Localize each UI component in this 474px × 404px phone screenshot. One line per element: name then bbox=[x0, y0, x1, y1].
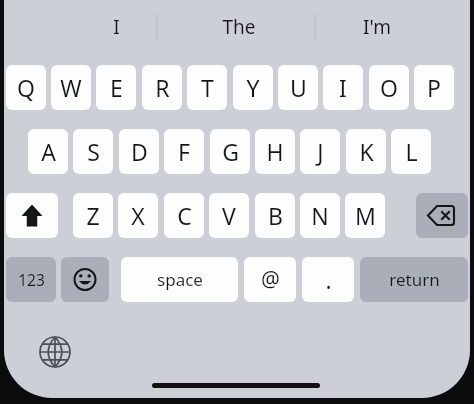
staticText: W bbox=[60, 72, 82, 103]
button[interactable]: . bbox=[302, 257, 354, 302]
button[interactable]: Backspace bbox=[416, 193, 468, 238]
staticText: N bbox=[311, 200, 329, 231]
staticText: P bbox=[427, 72, 441, 103]
button[interactable]: Y bbox=[233, 65, 273, 110]
button[interactable]: N bbox=[300, 193, 340, 238]
button[interactable]: V bbox=[209, 193, 249, 238]
button[interactable]: return bbox=[360, 257, 468, 302]
button[interactable]: 123 bbox=[6, 257, 56, 302]
button[interactable]: K bbox=[346, 129, 386, 174]
button[interactable]: X bbox=[118, 193, 158, 238]
staticText: L bbox=[405, 136, 418, 167]
button[interactable]: space bbox=[121, 257, 238, 302]
button[interactable]: Emoji keyboard bbox=[61, 257, 109, 302]
button[interactable]: G bbox=[210, 129, 250, 174]
button[interactable]: M bbox=[345, 193, 385, 238]
button[interactable]: S bbox=[73, 129, 113, 174]
button[interactable]: W bbox=[51, 65, 91, 110]
staticText: I'm bbox=[363, 14, 391, 40]
button[interactable]: A bbox=[28, 129, 68, 174]
staticText: K bbox=[359, 136, 374, 167]
button[interactable]: I bbox=[74, 11, 159, 43]
staticText: S bbox=[87, 136, 100, 167]
staticText: @ bbox=[261, 265, 280, 294]
staticText: M bbox=[355, 200, 376, 231]
staticText: O bbox=[380, 72, 398, 103]
button[interactable]: J bbox=[300, 129, 340, 174]
button[interactable]: H bbox=[255, 129, 295, 174]
staticText: J bbox=[317, 136, 324, 167]
button[interactable]: L bbox=[391, 129, 431, 174]
button[interactable]: Z bbox=[73, 193, 113, 238]
button[interactable]: Q bbox=[6, 65, 46, 110]
button[interactable]: C bbox=[164, 193, 204, 238]
button[interactable]: U bbox=[278, 65, 318, 110]
button[interactable]: O bbox=[369, 65, 409, 110]
staticText: Y bbox=[246, 72, 260, 103]
button[interactable]: @ bbox=[244, 257, 296, 302]
button[interactable]: Switch keyboard language bbox=[34, 331, 76, 373]
staticText: I bbox=[113, 14, 120, 40]
staticText: E bbox=[110, 72, 123, 103]
staticText: . bbox=[325, 264, 332, 295]
staticText: Z bbox=[86, 200, 100, 231]
staticText: 123 bbox=[18, 269, 45, 290]
staticText: I bbox=[339, 72, 347, 103]
button[interactable]: P bbox=[414, 65, 454, 110]
staticText: The bbox=[222, 14, 256, 40]
button[interactable]: The bbox=[179, 11, 299, 43]
button[interactable]: F bbox=[164, 129, 204, 174]
staticText: H bbox=[266, 136, 284, 167]
button[interactable]: B bbox=[255, 193, 295, 238]
staticText: X bbox=[131, 200, 145, 231]
staticText: Q bbox=[17, 72, 35, 103]
button[interactable]: I bbox=[323, 65, 363, 110]
button[interactable]: R bbox=[142, 65, 182, 110]
button[interactable]: E bbox=[96, 65, 136, 110]
button[interactable]: Shift bbox=[6, 193, 58, 238]
button[interactable]: I'm bbox=[329, 11, 424, 43]
button[interactable]: T bbox=[187, 65, 227, 110]
staticText: A bbox=[41, 136, 56, 167]
staticText: B bbox=[268, 200, 283, 231]
staticText: U bbox=[290, 72, 307, 103]
staticText: V bbox=[222, 200, 236, 231]
staticText: C bbox=[177, 200, 192, 231]
staticText: G bbox=[222, 136, 239, 167]
staticText: return bbox=[389, 268, 440, 291]
button[interactable]: D bbox=[119, 129, 159, 174]
staticText: T bbox=[201, 72, 214, 103]
staticText: F bbox=[178, 136, 190, 167]
staticText: R bbox=[155, 72, 170, 103]
staticText: D bbox=[131, 136, 148, 167]
staticText: space bbox=[157, 268, 203, 291]
